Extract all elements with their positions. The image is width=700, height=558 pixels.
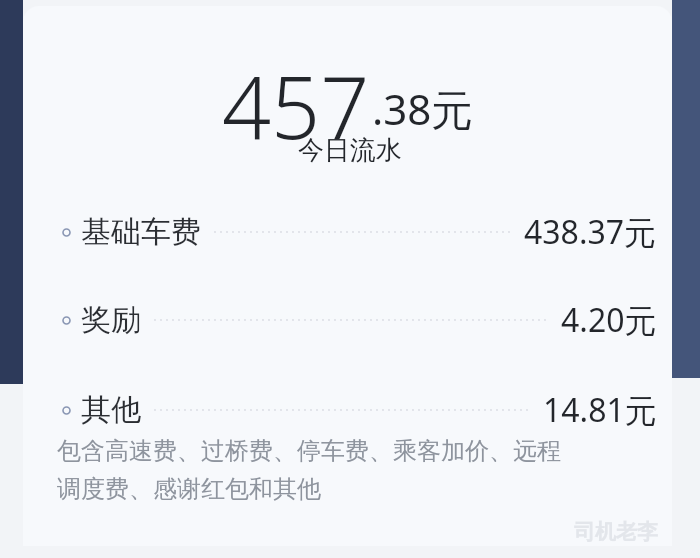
- staticText: 14.81元: [543, 388, 657, 432]
- staticText: 今日流水: [0, 134, 700, 167]
- staticText: 457: [222, 47, 370, 164]
- staticText: 包含高速费、过桥费、停车费、乘客加价、远程: [57, 436, 561, 466]
- button[interactable]: 基础车费: [23, 204, 672, 260]
- staticText: 438.37元: [524, 210, 657, 254]
- button[interactable]: 奖励: [23, 292, 672, 348]
- staticText: 奖励: [81, 301, 141, 339]
- staticText: 基础车费: [81, 213, 201, 251]
- staticText: 调度费、感谢红包和其他: [57, 474, 321, 504]
- staticText: .38元: [372, 80, 474, 137]
- staticText: 4.20元: [561, 298, 657, 342]
- staticText: 司机老李: [574, 519, 658, 545]
- button[interactable]: 其他: [23, 382, 672, 438]
- staticText: 其他: [81, 391, 141, 429]
